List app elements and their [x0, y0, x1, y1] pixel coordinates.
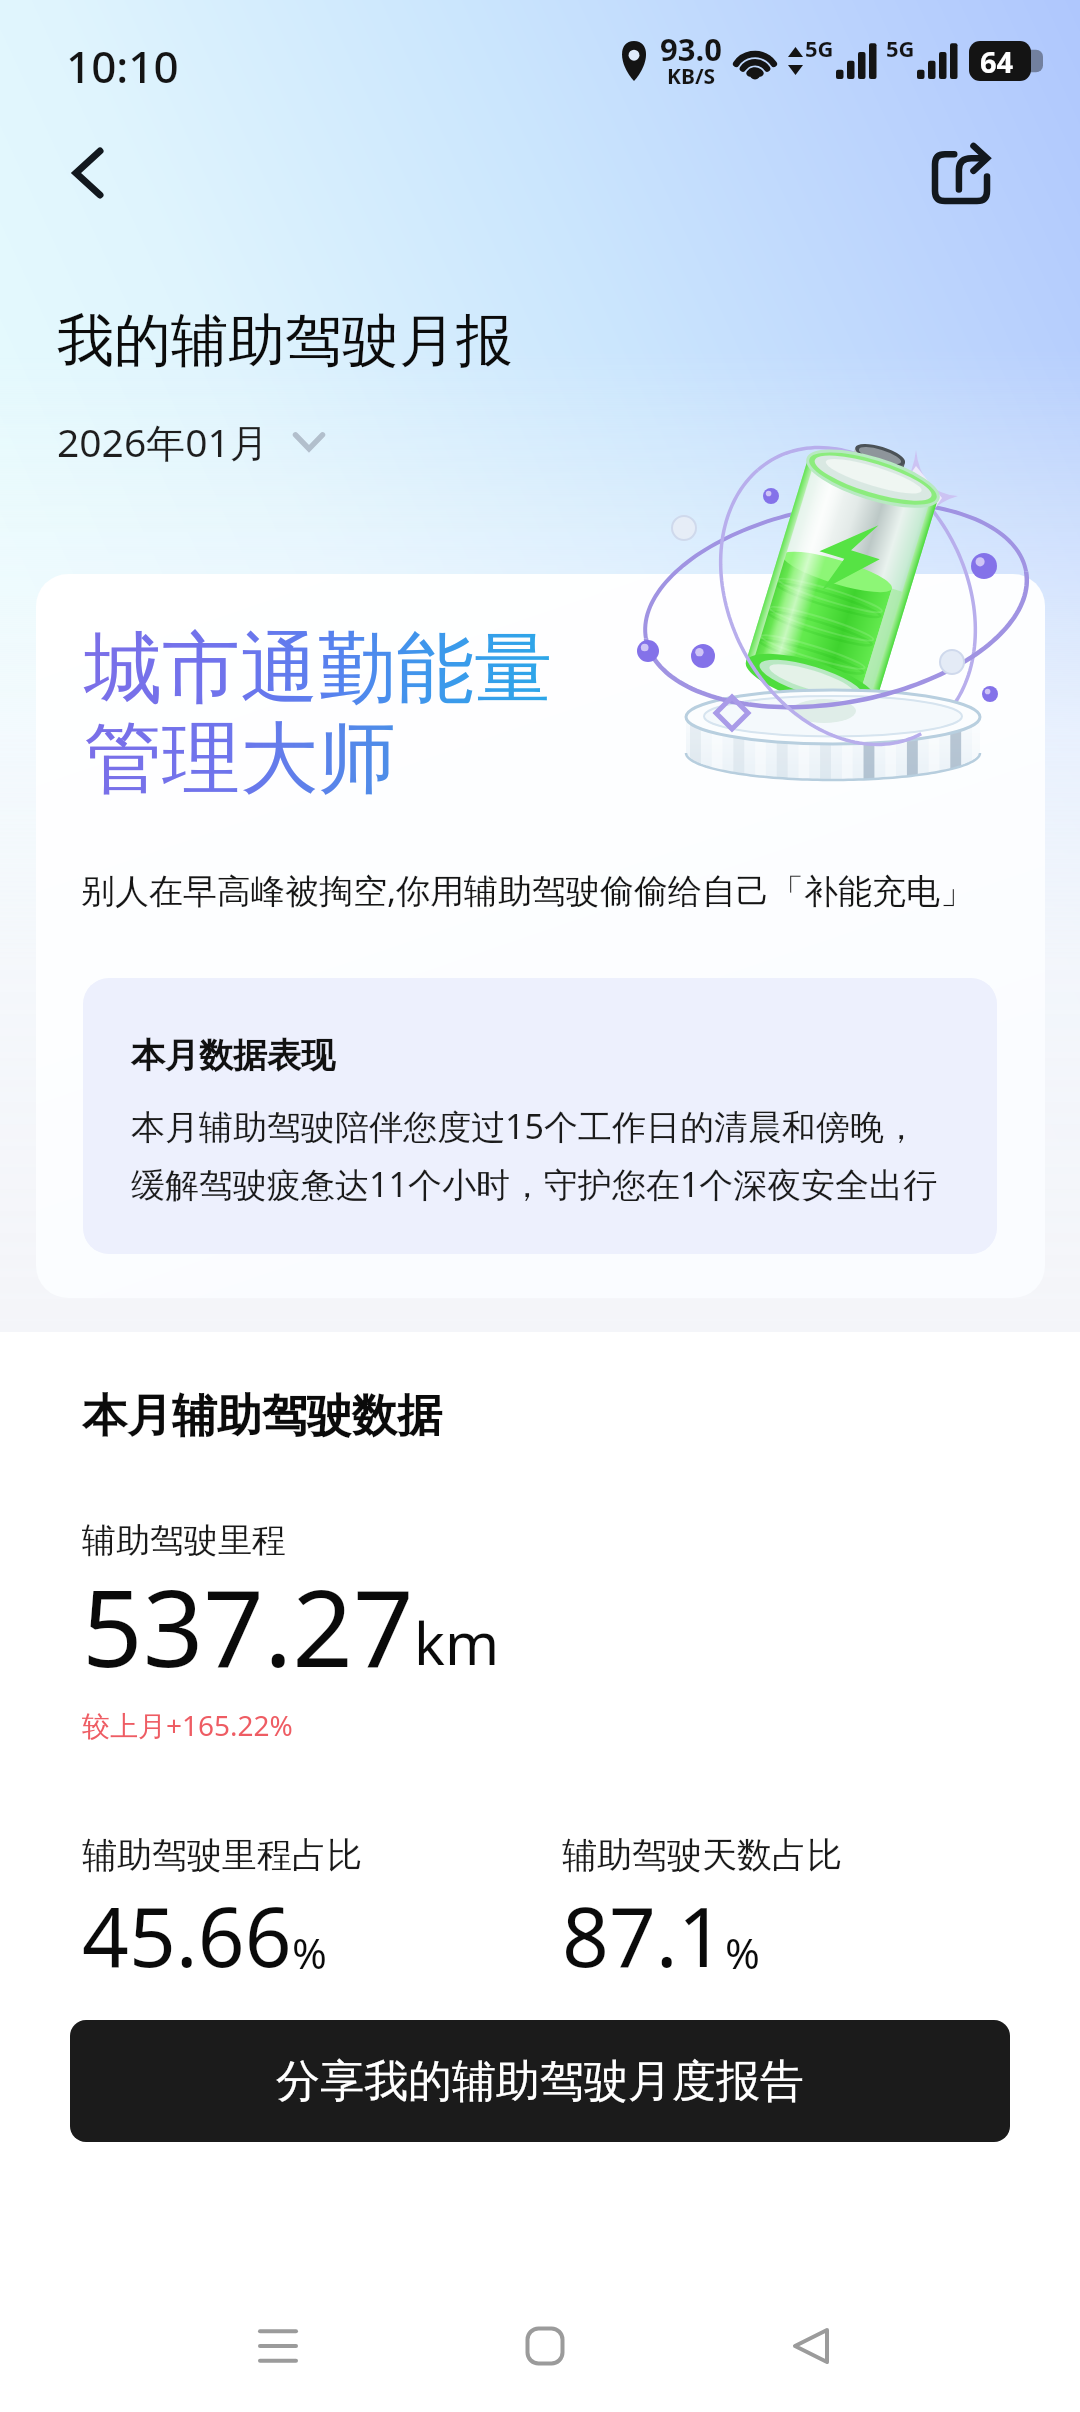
staticText: 辅助驾驶天数占比	[562, 1833, 842, 1877]
staticText: 本月辅助驾驶数据	[82, 1388, 442, 1445]
staticText: 87.1	[562, 1879, 725, 1991]
staticText: 缓解驾驶疲惫达11个小时，守护您在1个深夜安全出行	[131, 1161, 938, 1207]
button[interactable]: Back	[38, 123, 138, 223]
staticText: 别人在早高峰被掏空,你用辅助驾驶偷偷给自己「补能充电」	[81, 867, 975, 913]
staticText: 辅助驾驶里程	[82, 1519, 286, 1562]
button[interactable]: Share	[910, 124, 1012, 226]
button[interactable]: 2026年01月	[41, 401, 341, 482]
button[interactable]: 分享我的辅助驾驶月度报告	[70, 2020, 1010, 2142]
staticText: 我的辅助驾驶月报	[57, 305, 513, 377]
staticText: 64	[980, 42, 1014, 81]
staticText: 10:10	[66, 36, 179, 96]
staticText: 537.27	[82, 1554, 414, 1698]
staticText: %	[292, 1924, 327, 1981]
staticText: 城市通勤能量	[84, 620, 552, 718]
staticText: 管理大师	[84, 710, 396, 808]
staticText: 辅助驾驶里程占比	[82, 1833, 362, 1877]
staticText: 分享我的辅助驾驶月度报告	[276, 2054, 804, 2109]
staticText: 45.66	[82, 1879, 292, 1991]
button[interactable]: Home	[465, 2280, 625, 2412]
button[interactable]: Recent apps	[198, 2280, 358, 2412]
staticText: %	[725, 1924, 760, 1981]
staticText: 较上月+165.22%	[82, 1706, 293, 1744]
staticText: 本月数据表现	[131, 1034, 335, 1077]
staticText: KB/S	[667, 62, 716, 86]
staticText: 5G	[805, 33, 834, 63]
staticText: 本月辅助驾驶陪伴您度过15个工作日的清晨和傍晚，	[131, 1103, 918, 1149]
staticText: km	[414, 1603, 500, 1682]
staticText: 5G	[886, 33, 915, 63]
staticText: 2026年01月	[57, 415, 269, 468]
button[interactable]: Back	[731, 2280, 891, 2412]
staticText: 93.0	[660, 28, 722, 70]
